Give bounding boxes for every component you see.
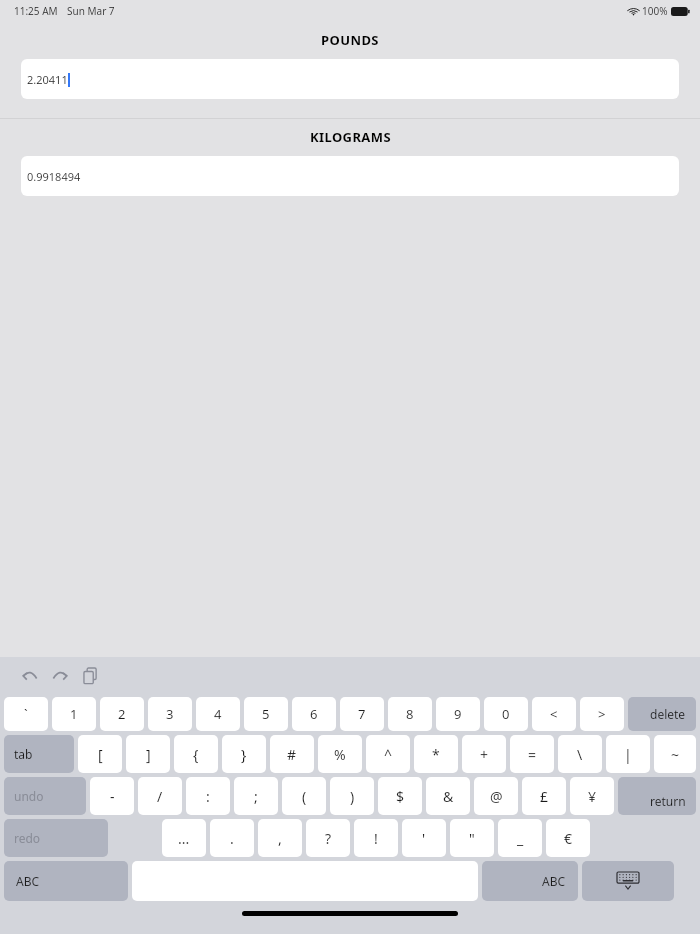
staticText: tab [14, 746, 33, 762]
button[interactable]: 4 [196, 697, 240, 731]
staticText: ! [374, 829, 378, 848]
button[interactable]: / [138, 777, 182, 815]
button[interactable]: } [222, 735, 266, 773]
button[interactable]: ... [162, 819, 206, 857]
button[interactable]: & [426, 777, 470, 815]
staticText: ' [422, 829, 426, 848]
staticText: 9 [454, 705, 462, 723]
button[interactable]: undo [4, 777, 86, 815]
button[interactable]: ( [282, 777, 326, 815]
button[interactable]: 5 [244, 697, 288, 731]
staticText: , [278, 829, 282, 848]
staticText: delete [650, 706, 686, 722]
staticText: # [287, 745, 297, 764]
staticText: ... [178, 829, 190, 848]
button[interactable]: ~ [654, 735, 696, 773]
button[interactable]: ) [330, 777, 374, 815]
staticText: 4 [214, 705, 222, 723]
button[interactable]: 1 [52, 697, 96, 731]
button[interactable]: ] [126, 735, 170, 773]
button[interactable]: ' [402, 819, 446, 857]
button[interactable]: _ [498, 819, 542, 857]
staticText: ^ [384, 745, 393, 764]
staticText: - [110, 787, 115, 806]
staticText: ABC [16, 873, 40, 889]
staticText: + [480, 745, 489, 764]
button[interactable]: # [270, 735, 314, 773]
button[interactable]: Undo [14, 661, 44, 691]
staticText: 100% [642, 4, 668, 18]
staticText: ; [254, 787, 258, 806]
button[interactable]: " [450, 819, 494, 857]
button[interactable]: \ [558, 735, 602, 773]
staticText: : [206, 787, 210, 806]
button[interactable]: + [462, 735, 506, 773]
button[interactable]: 3 [148, 697, 192, 731]
staticText: ABC [542, 873, 566, 889]
button[interactable]: * [414, 735, 458, 773]
staticText: 8 [406, 705, 414, 723]
button[interactable]: @ [474, 777, 518, 815]
button[interactable]: 0.9918494 [21, 156, 679, 196]
button[interactable]: | [606, 735, 650, 773]
button[interactable]: Paste [76, 661, 106, 691]
staticText: @ [490, 787, 503, 806]
button[interactable]: 8 [388, 697, 432, 731]
button[interactable]: delete [628, 697, 696, 731]
button[interactable]: ABC [482, 861, 578, 901]
staticText: £ [540, 787, 549, 806]
button[interactable]: . [210, 819, 254, 857]
staticText: . [230, 829, 234, 848]
staticText: return [650, 793, 686, 809]
staticText: ] [146, 745, 151, 764]
staticText: * [432, 745, 440, 764]
button[interactable]: redo [4, 819, 108, 857]
staticText: > [598, 705, 606, 723]
staticText: 6 [310, 705, 318, 723]
staticText: / [157, 787, 163, 806]
staticText: € [564, 829, 573, 848]
staticText: ? [325, 829, 332, 848]
staticText: < [550, 705, 558, 723]
button[interactable]: ; [234, 777, 278, 815]
staticText: ( [302, 787, 307, 806]
button[interactable]: 7 [340, 697, 384, 731]
staticText: [ [98, 745, 103, 764]
button[interactable]: ! [354, 819, 398, 857]
button[interactable]: 0 [484, 697, 528, 731]
staticText: | [624, 745, 632, 764]
button[interactable]: 2 [100, 697, 144, 731]
button[interactable]: $ [378, 777, 422, 815]
button[interactable]: ? [306, 819, 350, 857]
staticText: POUNDS [321, 31, 379, 49]
button[interactable]: € [546, 819, 590, 857]
staticText: \ [577, 745, 583, 764]
button[interactable]: 9 [436, 697, 480, 731]
button[interactable]: 2.20411 [21, 59, 679, 99]
button[interactable]: - [90, 777, 134, 815]
button[interactable]: ` [4, 697, 48, 731]
button[interactable]: % [318, 735, 362, 773]
button[interactable]: tab [4, 735, 74, 773]
staticText: 0 [502, 705, 510, 723]
button[interactable]: = [510, 735, 554, 773]
button[interactable]: : [186, 777, 230, 815]
button[interactable]: £ [522, 777, 566, 815]
button[interactable]: ABC [4, 861, 128, 901]
staticText: $ [396, 787, 405, 806]
button[interactable]: Redo [45, 661, 75, 691]
button[interactable]: { [174, 735, 218, 773]
button[interactable]: Hide keyboard [582, 861, 674, 901]
button[interactable]: , [258, 819, 302, 857]
button[interactable]: < [532, 697, 576, 731]
staticText: } [241, 745, 247, 764]
staticText: Sun Mar 7 [67, 4, 115, 18]
button[interactable]: [ [78, 735, 122, 773]
staticText: = [528, 745, 537, 764]
button[interactable]: return [618, 777, 696, 815]
button[interactable]: ^ [366, 735, 410, 773]
button[interactable]: > [580, 697, 624, 731]
button[interactable]: ¥ [570, 777, 614, 815]
button[interactable]: 6 [292, 697, 336, 731]
